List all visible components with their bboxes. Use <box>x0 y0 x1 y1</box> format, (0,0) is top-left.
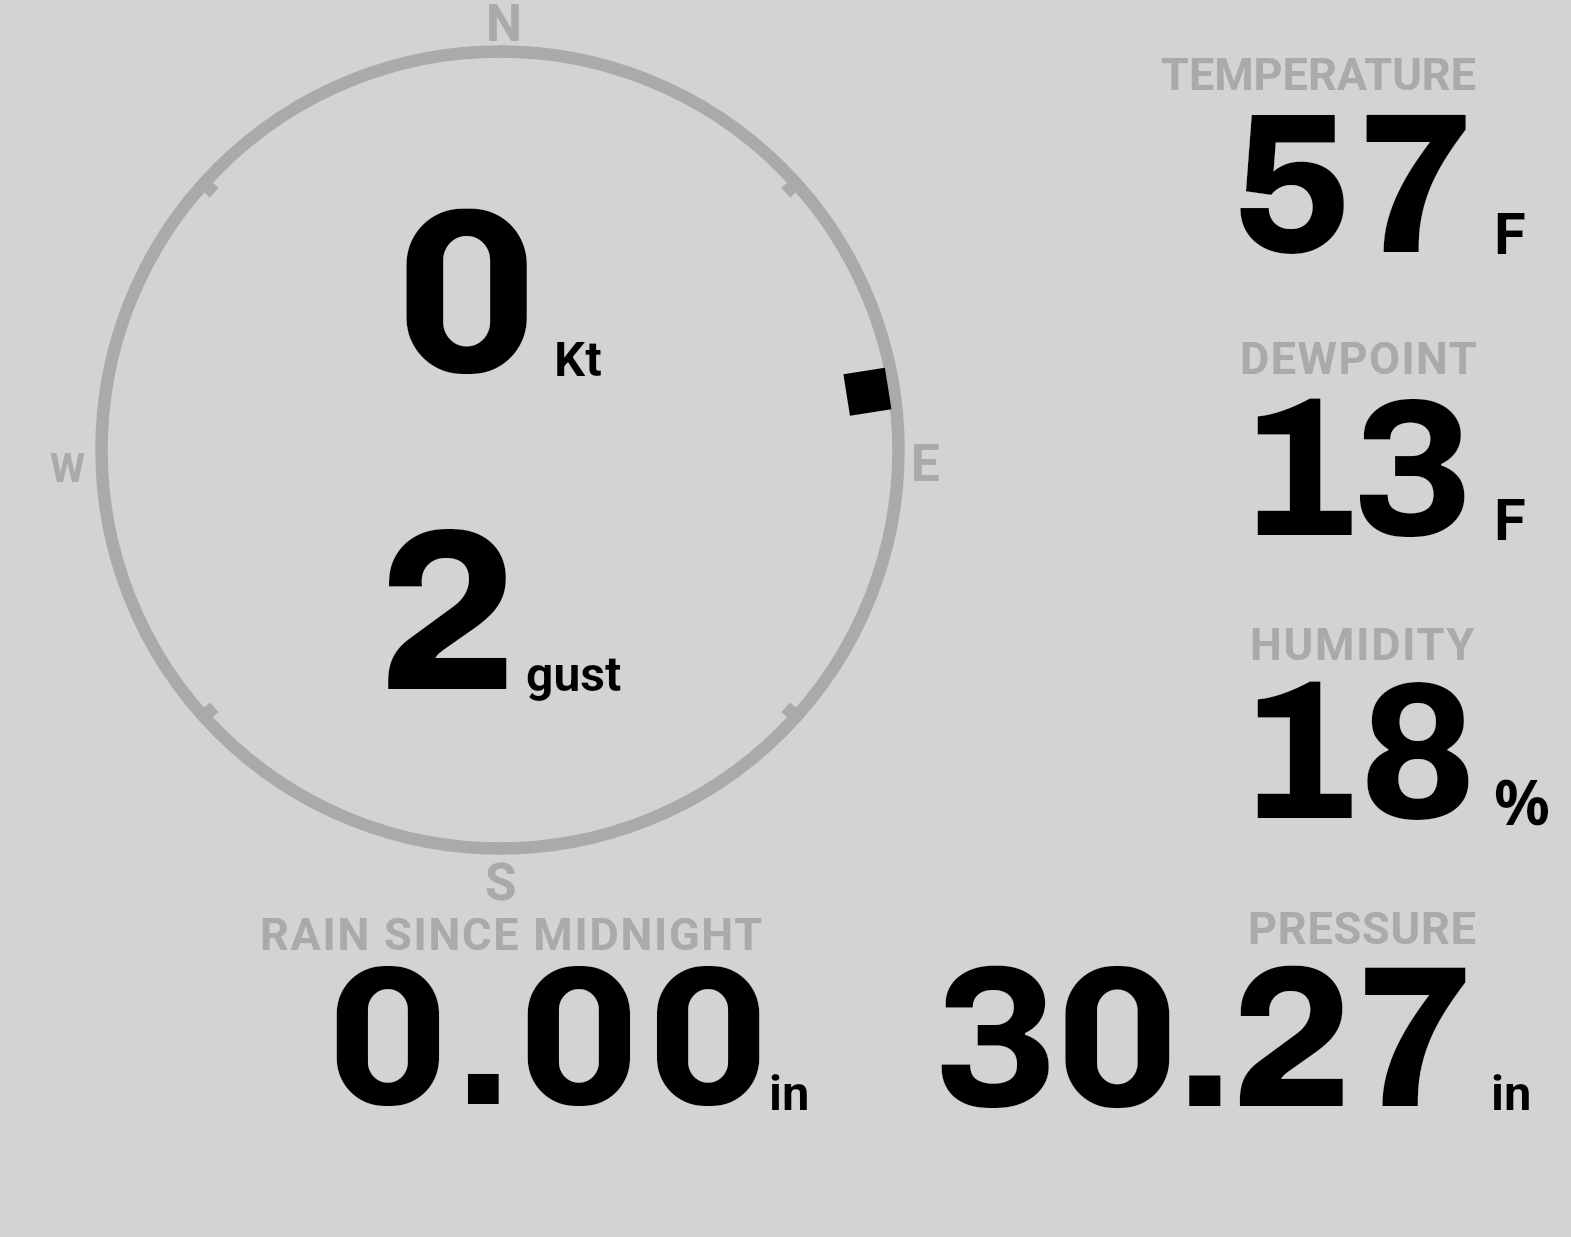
button[interactable]: HUMIDITY <box>1140 611 1560 846</box>
staticText: PRESSURE <box>1248 902 1477 955</box>
staticText: % <box>1494 759 1550 843</box>
button[interactable]: TEMPERATURE <box>1140 40 1550 275</box>
staticText: gust <box>526 646 622 702</box>
staticText: E <box>911 434 940 494</box>
button[interactable]: PRESSURE <box>930 900 1540 1125</box>
staticText: in <box>1491 1065 1532 1122</box>
button[interactable]: Wind speed and direction <box>95 45 905 855</box>
staticText: W <box>50 445 85 492</box>
staticText: DEWPOINT <box>1240 332 1479 385</box>
staticText: 0.00 <box>327 918 777 1143</box>
staticText: TEMPERATURE <box>1161 48 1476 101</box>
staticText: 13 <box>1242 351 1464 584</box>
staticText: 2 <box>377 472 520 747</box>
button[interactable]: DEWPOINT <box>1140 325 1550 560</box>
staticText: in <box>769 1065 810 1122</box>
staticText: N <box>486 0 522 54</box>
staticText: 0 <box>395 153 539 430</box>
staticText: F <box>1494 200 1526 268</box>
staticText: F <box>1494 486 1526 554</box>
staticText: 57 <box>1231 65 1476 300</box>
staticText: HUMIDITY <box>1250 618 1477 671</box>
staticText: 18 <box>1242 634 1474 867</box>
staticText: 30.27 <box>934 917 1474 1142</box>
staticText: Kt <box>554 331 602 388</box>
staticText: S <box>485 853 517 913</box>
staticText: RAIN SINCE MIDNIGHT <box>260 908 764 961</box>
button[interactable]: RAIN SINCE MIDNIGHT <box>250 900 820 1125</box>
